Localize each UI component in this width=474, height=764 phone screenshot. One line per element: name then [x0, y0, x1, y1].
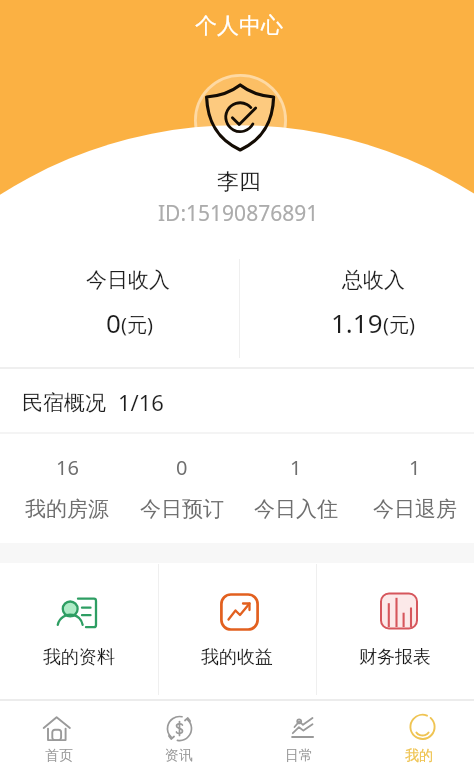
other: Daily: [286, 715, 313, 742]
button[interactable]: 16: [9, 454, 125, 544]
button[interactable]: 1: [357, 454, 473, 544]
staticText: 个人中心: [195, 12, 283, 40]
other: Profile: [406, 715, 433, 742]
staticText: 0: [106, 305, 121, 340]
button[interactable]: News: [120, 701, 238, 764]
staticText: 1: [409, 454, 421, 481]
button[interactable]: 1: [238, 454, 354, 544]
staticText: (元): [383, 311, 415, 338]
staticText: 首页: [45, 747, 73, 764]
button[interactable]: 总收入: [239, 246, 474, 358]
button[interactable]: 我的资料: [0, 564, 158, 695]
button[interactable]: 财务报表: [316, 564, 474, 695]
button[interactable]: 民宿概况: [0, 372, 474, 428]
staticText: 我的资料: [43, 646, 115, 669]
button[interactable]: Home: [0, 701, 118, 764]
staticText: 我的: [405, 747, 433, 764]
button[interactable]: 0: [124, 454, 240, 544]
button[interactable]: 我的收益: [158, 564, 316, 695]
staticText: (元): [121, 311, 153, 338]
staticText: 民宿概况: [22, 390, 106, 416]
staticText: 0: [176, 454, 188, 481]
staticText: 我的房源: [25, 496, 109, 522]
staticText: 李四: [217, 168, 261, 196]
button[interactable]: 个人中心: [195, 12, 283, 40]
staticText: 1/16: [118, 387, 164, 417]
staticText: 今日预订: [140, 496, 224, 522]
button[interactable]: Profile: [360, 701, 474, 764]
staticText: 今日收入: [86, 267, 170, 293]
other: News: [166, 715, 193, 742]
staticText: 总收入: [342, 267, 405, 293]
staticText: 16: [56, 454, 79, 481]
staticText: 今日退房: [373, 496, 457, 522]
staticText: 我的收益: [201, 646, 273, 669]
staticText: ID:15190876891: [158, 199, 319, 228]
button[interactable]: Daily: [240, 701, 358, 764]
staticText: 今日入住: [254, 496, 338, 522]
button[interactable]: 今日收入: [0, 246, 239, 358]
staticText: 1.19: [331, 305, 383, 340]
staticText: 日常: [285, 747, 313, 764]
staticText: 1: [290, 454, 302, 481]
staticText: 资讯: [165, 747, 193, 764]
staticText: 财务报表: [359, 646, 431, 669]
other: Home: [46, 715, 73, 742]
